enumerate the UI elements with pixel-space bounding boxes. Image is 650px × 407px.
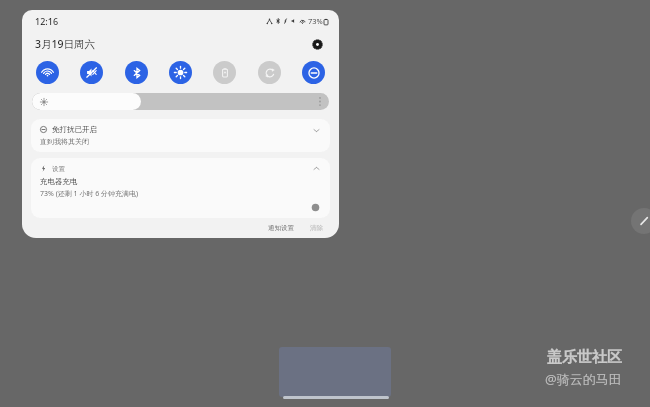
staticText: 3月19日周六: [35, 37, 96, 51]
staticText: 盖乐世社区: [547, 348, 622, 367]
button[interactable]: Bluetooth: [125, 61, 148, 84]
button[interactable]: Auto brightness: [169, 61, 192, 84]
staticText: @骑云的马田: [545, 370, 622, 388]
staticText: 12:16: [35, 15, 59, 27]
button[interactable]: Settings: [308, 35, 326, 53]
button[interactable]: Collapse: [312, 164, 321, 173]
button[interactable]: Power saving: [213, 61, 236, 84]
button[interactable]: 设置: [31, 158, 330, 218]
button[interactable]: Battery: [310, 202, 321, 213]
staticText: 设置: [52, 165, 65, 173]
button[interactable]: Wi-Fi: [36, 61, 59, 84]
staticText: 清除: [310, 224, 323, 232]
button[interactable]: Edit: [631, 208, 650, 234]
button[interactable]: 清除: [307, 224, 326, 232]
button[interactable]: Sync: [258, 61, 281, 84]
button[interactable]: 通知设置: [265, 224, 297, 232]
button[interactable]: 免打扰已开启: [31, 119, 330, 152]
staticText: 通知设置: [268, 224, 294, 232]
button[interactable]: Mute: [80, 61, 103, 84]
staticText: 73%: [308, 16, 323, 26]
staticText: 充电器充电: [40, 177, 78, 186]
button[interactable]: Expand: [312, 126, 321, 135]
staticText: 73% (还剩 1 小时 6 分钟充满电): [40, 189, 139, 199]
staticText: 免打扰已开启: [52, 125, 97, 134]
button[interactable]: Do not disturb: [302, 61, 325, 84]
staticText: 直到我将其关闭: [40, 137, 89, 146]
button[interactable]: Brightness: [32, 93, 329, 110]
